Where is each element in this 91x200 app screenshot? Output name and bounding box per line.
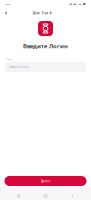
button[interactable]: Назад [64,184,80,200]
staticText: Далее [40,179,50,183]
button[interactable]: Введите Логин [5,62,86,72]
staticText: 100% [77,2,82,6]
button[interactable]: Домой [37,184,53,200]
staticText: Введите Логин [9,65,29,69]
button[interactable]: Далее [4,176,86,186]
button[interactable]: Обзор [11,184,27,200]
button[interactable]: Назад [0,8,12,18]
staticText: 15:41 [5,2,10,6]
staticText: Шаг 3 из 4 [32,11,51,15]
staticText: Введите Логин [23,42,68,50]
staticText: Логин [5,57,11,61]
